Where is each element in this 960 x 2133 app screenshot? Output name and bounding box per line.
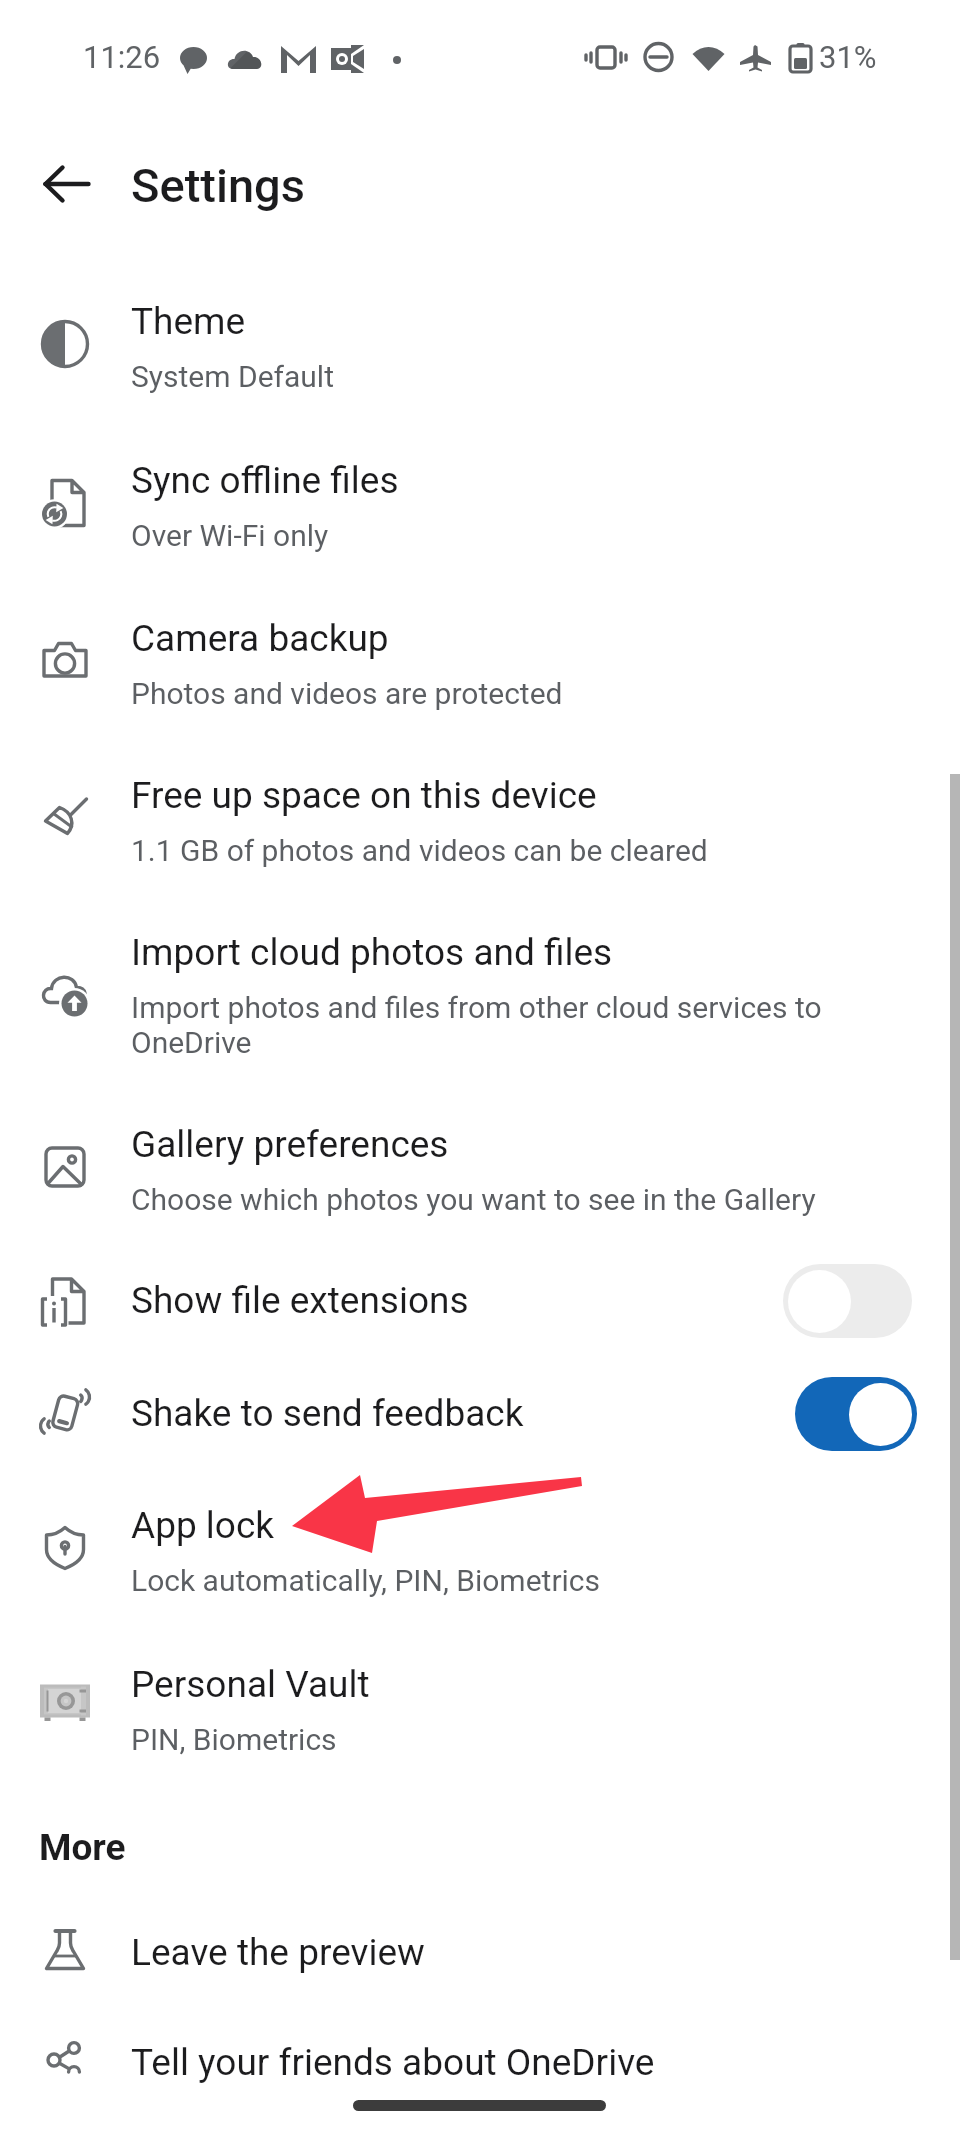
staticText: Over Wi-Fi only [131, 518, 329, 553]
button[interactable]: Gallery preferences [0, 1105, 960, 1235]
staticText: Import photos and files from other cloud… [131, 990, 822, 1060]
button[interactable]: Free up space on this device [0, 756, 960, 886]
button[interactable]: Import cloud photos and files [0, 913, 960, 1078]
staticText: App lock [131, 1504, 275, 1547]
button[interactable]: Theme [0, 282, 960, 412]
staticText: Show file extensions [131, 1279, 469, 1322]
staticText: Settings [131, 158, 305, 213]
button[interactable]: Show file extensions [783, 1264, 912, 1338]
button[interactable]: Shake to send feedback [795, 1377, 917, 1451]
staticText: Import cloud photos and files [131, 931, 613, 974]
staticText: 31% [819, 39, 877, 75]
staticText: 1.1 GB of photos and videos can be clear… [131, 833, 708, 868]
staticText: Gallery preferences [131, 1123, 449, 1166]
button[interactable]: Camera backup [0, 599, 960, 729]
button[interactable]: Show file extensions [0, 1257, 960, 1344]
staticText: Personal Vault [131, 1663, 370, 1706]
button[interactable]: Sync offline files [0, 441, 960, 571]
staticText: Shake to send feedback [131, 1392, 524, 1435]
staticText: Sync offline files [131, 459, 399, 502]
staticText: System Default [131, 359, 334, 394]
staticText: Leave the preview [131, 1931, 425, 1974]
staticText: More [39, 1826, 126, 1869]
staticText: Lock automatically, PIN, Biometrics [131, 1563, 601, 1598]
button[interactable]: Tell your friends about OneDrive [0, 2023, 960, 2102]
staticText: Tell your friends about OneDrive [131, 2041, 655, 2084]
button[interactable]: Personal Vault [0, 1645, 960, 1775]
staticText: Choose which photos you want to see in t… [131, 1182, 816, 1217]
button[interactable]: Shake to send feedback [0, 1370, 960, 1457]
staticText: Free up space on this device [131, 774, 597, 817]
staticText: Theme [131, 300, 246, 343]
button[interactable]: Leave the preview [0, 1913, 960, 1992]
staticText: 11:26 [83, 39, 161, 75]
button[interactable]: Back [17, 134, 117, 234]
staticText: PIN, Biometrics [131, 1722, 337, 1757]
staticText: Camera backup [131, 617, 389, 660]
staticText: Photos and videos are protected [131, 676, 563, 711]
button[interactable]: App lock [0, 1486, 960, 1616]
